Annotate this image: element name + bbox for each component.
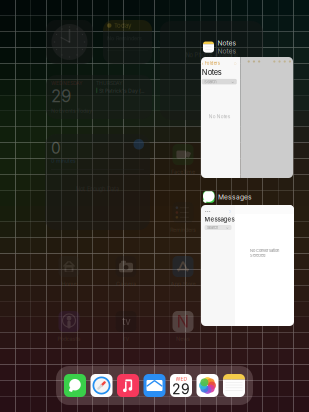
staticText: ‹ Folders	[202, 61, 220, 66]
button[interactable]: Home	[45, 256, 93, 287]
staticText: News	[176, 335, 190, 342]
staticText: ◌	[234, 60, 237, 66]
staticText: No Conversation Selected	[250, 248, 279, 258]
staticText: Reminders	[170, 226, 196, 233]
staticText: 0 minutes	[51, 158, 76, 164]
button[interactable]: N	[159, 311, 207, 342]
staticText: Notes	[202, 68, 222, 77]
button[interactable]: Photos	[196, 374, 218, 397]
staticText: Home	[61, 280, 76, 287]
button[interactable]: Mail	[143, 374, 165, 397]
staticText: Notes	[217, 47, 236, 55]
staticText: Search	[204, 79, 216, 84]
staticText: ◌	[228, 208, 231, 214]
staticText: No Events Today	[51, 108, 92, 114]
staticText: 0	[51, 139, 61, 158]
staticText: 29	[172, 381, 190, 398]
staticText: TV	[122, 335, 129, 342]
staticText: App Store	[170, 280, 195, 287]
button[interactable]: FaceTime	[159, 144, 207, 175]
staticText: ⌄	[231, 79, 234, 84]
staticText: Camera	[116, 280, 136, 287]
button[interactable]: Notes	[201, 37, 293, 178]
staticText: 29	[51, 86, 71, 106]
button[interactable]: App Store	[159, 256, 207, 287]
staticText: FaceTime	[171, 168, 195, 175]
staticText: THURSDAY	[96, 80, 122, 86]
staticText: Notes	[217, 39, 236, 47]
staticText: Today	[114, 22, 131, 29]
staticText: Search	[207, 225, 218, 230]
button[interactable]: Podcasts	[45, 311, 93, 342]
staticText: Messages	[218, 193, 252, 201]
staticText: No Photos Available	[185, 52, 237, 59]
staticText: Not Enough Data	[76, 186, 119, 193]
button[interactable]: Camera	[102, 256, 150, 287]
staticText: N	[176, 311, 189, 332]
staticText: St Patrick's Day (...	[99, 88, 144, 94]
staticText: WED	[175, 376, 186, 382]
button[interactable]: Safari	[90, 374, 112, 397]
staticText: •••	[204, 209, 210, 213]
button[interactable]: Music	[117, 374, 139, 397]
staticText: No Notes	[209, 114, 230, 119]
staticText: Messages	[204, 216, 234, 223]
button[interactable]: Messages	[201, 189, 294, 326]
staticText: ⌄	[226, 225, 229, 230]
button[interactable]: Calendar	[170, 374, 192, 397]
staticText: tv	[122, 316, 130, 327]
staticText: Podcasts	[57, 335, 80, 342]
staticText: WEDNESDAY	[51, 80, 82, 86]
button[interactable]: Messages	[64, 374, 86, 397]
button[interactable]: Reminders	[159, 202, 207, 233]
button[interactable]	[102, 311, 150, 342]
button[interactable]: Notes	[223, 374, 245, 397]
